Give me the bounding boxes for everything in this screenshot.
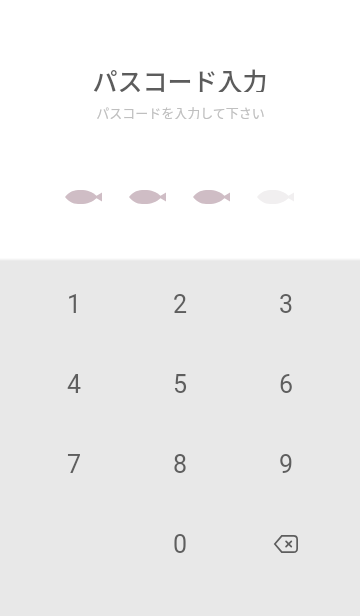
button[interactable]: 0 (127, 504, 233, 584)
staticText: 6 (279, 370, 294, 399)
button[interactable]: 1 (21, 264, 127, 344)
button[interactable]: 5 (127, 344, 233, 424)
button[interactable]: 9 (233, 424, 339, 504)
button[interactable]: 6 (233, 344, 339, 424)
staticText: 5 (173, 370, 188, 399)
staticText: 9 (279, 450, 294, 479)
staticText: 0 (173, 530, 188, 559)
button[interactable]: 2 (127, 264, 233, 344)
button[interactable]: 8 (127, 424, 233, 504)
button[interactable]: 7 (21, 424, 127, 504)
staticText: パスコード入力 (92, 62, 268, 92)
staticText: 1 (67, 290, 82, 319)
button[interactable]: Delete (233, 504, 339, 584)
staticText: 3 (279, 290, 294, 319)
staticText: パスコードを入力して下さい (96, 103, 265, 119)
other: Backspace (274, 535, 298, 553)
staticText: 7 (67, 450, 82, 479)
staticText: 8 (173, 450, 188, 479)
button[interactable]: 3 (233, 264, 339, 344)
staticText: 4 (67, 370, 82, 399)
button[interactable]: 4 (21, 344, 127, 424)
staticText: 2 (173, 290, 188, 319)
